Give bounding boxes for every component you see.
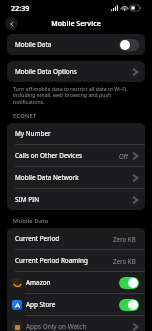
staticText: Current Period Roaming xyxy=(15,256,113,265)
button[interactable] xyxy=(119,277,139,289)
staticText: App Store xyxy=(26,300,119,309)
staticText: Mobile Data xyxy=(15,40,119,49)
button[interactable]: SIM PIN xyxy=(7,189,145,210)
staticText: Mobile Service xyxy=(51,19,101,29)
staticText: Calls on Other Devices xyxy=(15,151,119,160)
staticText: Mobile Data Network xyxy=(15,173,132,182)
staticText: Turn off mobile data to restrict all dat… xyxy=(13,85,140,106)
button[interactable]: Current Period xyxy=(7,228,145,249)
staticText: Current Period xyxy=(15,234,113,243)
button[interactable] xyxy=(119,39,139,51)
button[interactable]: Back xyxy=(5,17,18,30)
staticText: 22:39 xyxy=(11,3,30,13)
button[interactable]: My Number xyxy=(7,123,145,144)
button[interactable]: Calls on Other Devices xyxy=(7,145,145,166)
button[interactable]: Mobile Data xyxy=(7,34,145,55)
staticText: Mobile Data Options xyxy=(15,67,132,76)
button[interactable] xyxy=(119,299,139,311)
button[interactable]: Apps Only on Watch xyxy=(7,316,145,331)
button[interactable]: App Store xyxy=(7,294,145,315)
button[interactable]: Amazon xyxy=(7,272,145,293)
staticText: Apps Only on Watch xyxy=(26,322,132,331)
staticText: Zero KB xyxy=(113,257,136,265)
staticText: Amazon xyxy=(26,278,119,287)
staticText: Off xyxy=(119,152,129,160)
staticText: Zero KB xyxy=(113,235,136,243)
staticText: SIM PIN xyxy=(15,195,132,204)
button[interactable]: Mobile Data Options xyxy=(7,61,145,82)
button[interactable]: Current Period Roaming xyxy=(7,250,145,271)
staticText: My Number xyxy=(15,129,139,138)
button[interactable]: Mobile Data Network xyxy=(7,167,145,188)
staticText: Mobile Data xyxy=(13,217,49,225)
staticText: ECONET xyxy=(13,112,37,120)
